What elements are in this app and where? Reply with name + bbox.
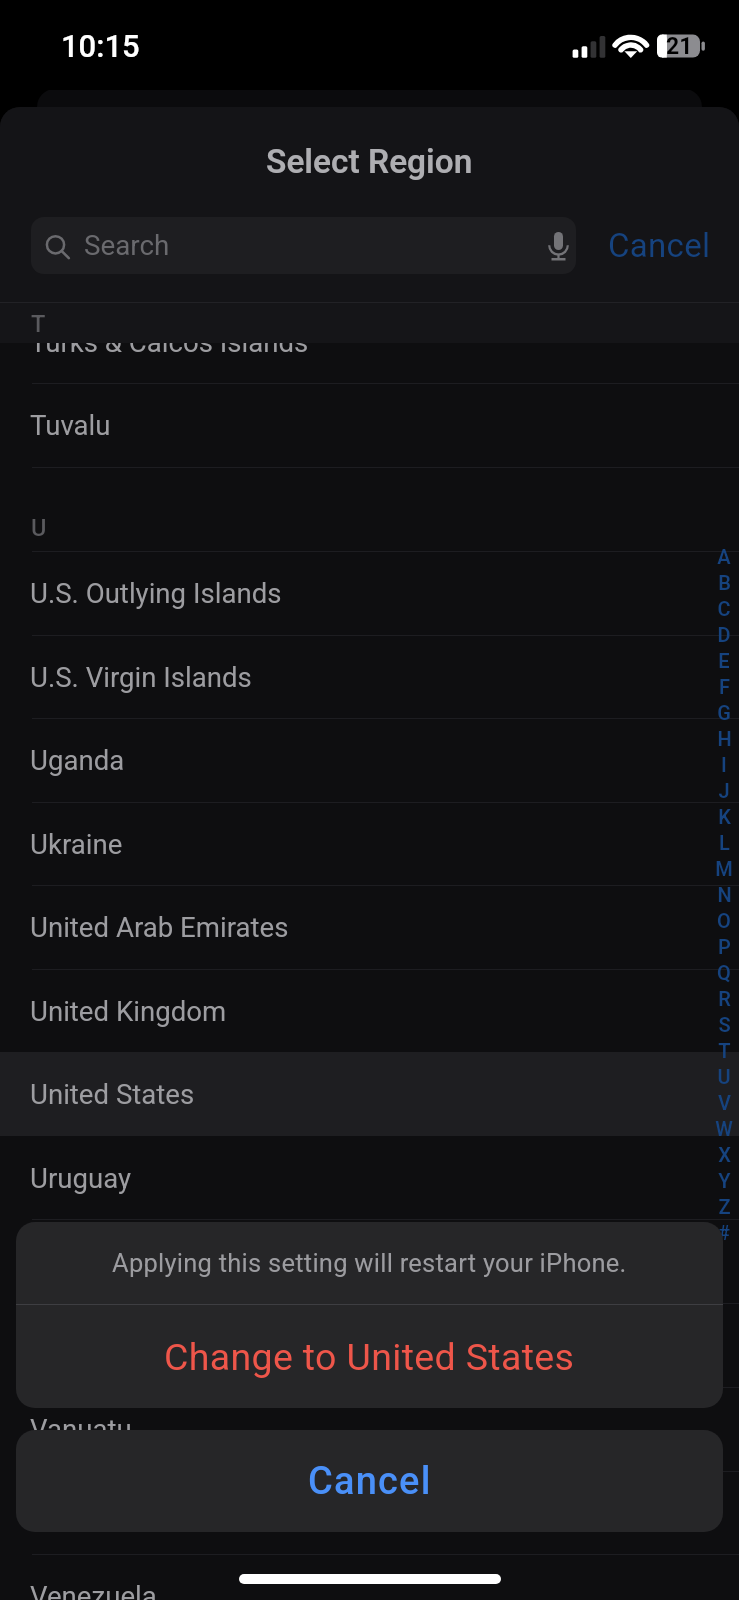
- staticText: Uruguay: [30, 1162, 132, 1194]
- staticText: 21: [666, 33, 693, 60]
- staticText: T: [31, 310, 46, 338]
- button[interactable]: Search: [31, 217, 576, 274]
- staticText: J: [718, 779, 730, 802]
- staticText: Uganda: [30, 744, 125, 776]
- staticText: Venezuela: [30, 1580, 157, 1600]
- staticText: Cancel: [308, 1459, 432, 1504]
- staticText: U: [31, 514, 47, 542]
- staticText: Tuvalu: [30, 409, 111, 441]
- staticText: S: [718, 1013, 731, 1036]
- button[interactable]: U.S. Virgin Islands: [0, 635, 739, 719]
- staticText: W: [715, 1117, 733, 1140]
- staticText: United States: [30, 1078, 195, 1110]
- button[interactable]: Voice search: [536, 217, 576, 260]
- staticText: Vanuatu: [30, 1413, 132, 1445]
- button[interactable]: Venezuela: [0, 1554, 739, 1600]
- button[interactable]: Turks & Caicos Islands: [0, 300, 739, 384]
- staticText: Y: [718, 1169, 731, 1192]
- staticText: D: [717, 623, 731, 646]
- staticText: Uzbekistan: [30, 1245, 166, 1277]
- staticText: H: [717, 727, 732, 750]
- staticText: Z: [718, 1195, 731, 1218]
- staticText: N: [717, 883, 732, 906]
- staticText: U.S. Virgin Islands: [30, 661, 252, 693]
- staticText: Applying this setting will restart your …: [112, 1248, 627, 1278]
- button[interactable]: United Kingdom: [0, 969, 739, 1053]
- staticText: X: [718, 1143, 731, 1166]
- button[interactable]: Vatican City: [0, 1471, 739, 1555]
- button[interactable]: United States: [0, 1052, 739, 1136]
- button[interactable]: Section index: [711, 543, 737, 1245]
- staticText: O: [717, 909, 731, 932]
- staticText: United Arab Emirates: [30, 911, 289, 943]
- button[interactable]: Cancel: [600, 217, 719, 274]
- button[interactable]: Uzbekistan: [0, 1219, 739, 1303]
- staticText: L: [719, 831, 730, 854]
- staticText: B: [718, 571, 731, 594]
- staticText: United Kingdom: [30, 995, 227, 1027]
- staticText: V: [718, 1091, 731, 1114]
- staticText: Q: [717, 961, 731, 984]
- button[interactable]: Ukraine: [0, 802, 739, 886]
- staticText: 10:15: [61, 28, 140, 64]
- staticText: E: [718, 649, 730, 672]
- staticText: Change to United States: [164, 1335, 575, 1379]
- button[interactable]: Uruguay: [0, 1136, 739, 1220]
- staticText: Search: [84, 229, 170, 262]
- staticText: R: [718, 987, 731, 1010]
- staticText: U.S. Outlying Islands: [30, 577, 282, 609]
- staticText: Cancel: [608, 226, 711, 265]
- button[interactable]: Change to United States: [16, 1305, 723, 1408]
- staticText: Ukraine: [30, 828, 123, 860]
- staticText: K: [718, 805, 731, 828]
- button[interactable]: Cancel: [16, 1430, 723, 1532]
- button[interactable]: U.S. Outlying Islands: [0, 551, 739, 635]
- staticText: M: [715, 857, 733, 880]
- staticText: F: [719, 675, 730, 698]
- staticText: A: [717, 545, 731, 568]
- button[interactable]: United Arab Emirates: [0, 885, 739, 969]
- button[interactable]: Vanuatu: [0, 1387, 739, 1471]
- staticText: C: [717, 597, 731, 620]
- staticText: Select Region: [266, 142, 473, 181]
- staticText: P: [718, 935, 731, 958]
- button[interactable]: Tuvalu: [0, 383, 739, 467]
- staticText: T: [718, 1039, 731, 1062]
- staticText: G: [717, 701, 731, 724]
- staticText: U: [717, 1065, 731, 1088]
- staticText: #: [718, 1221, 730, 1244]
- staticText: I: [721, 753, 727, 776]
- staticText: Turks & Caicos Islands: [30, 326, 309, 358]
- button[interactable]: Uganda: [0, 718, 739, 802]
